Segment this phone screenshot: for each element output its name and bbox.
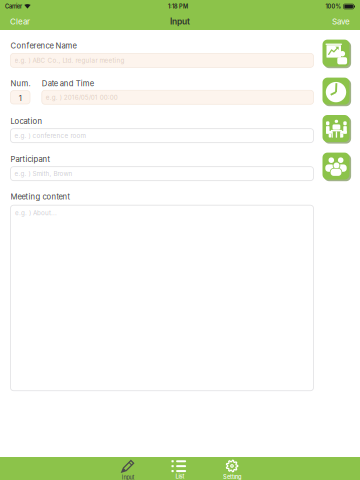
button[interactable]: Save <box>323 13 360 30</box>
staticText: List <box>175 473 184 480</box>
button[interactable]: Clear <box>0 13 39 30</box>
staticText: 1:18 PM <box>168 3 188 10</box>
button[interactable]: Pick participants <box>322 153 351 181</box>
button[interactable]: Input <box>102 457 154 480</box>
staticText: Participant <box>10 155 50 164</box>
staticText: Conference Name <box>10 41 76 50</box>
staticText: Input <box>121 474 134 480</box>
staticText: e.g. ) ABC Co., Ltd. regular meeting <box>14 57 124 64</box>
staticText: Date and Time <box>42 79 94 88</box>
button[interactable]: List <box>154 457 206 480</box>
staticText: Input <box>170 16 190 27</box>
staticText: 100% <box>325 3 341 10</box>
button[interactable]: Setting <box>206 457 258 480</box>
staticText: Location <box>10 117 42 126</box>
staticText: Meeting content <box>10 192 70 201</box>
staticText: e.g. ) 2016/05/01 00:00 <box>46 94 118 101</box>
staticText: Clear <box>10 17 30 26</box>
button[interactable]: Conference name list <box>322 40 351 68</box>
staticText: Num. <box>10 79 30 88</box>
staticText: Setting <box>223 474 241 480</box>
staticText: e.g. ) Smith, Brown <box>14 170 72 178</box>
staticText: Save <box>332 17 350 26</box>
staticText: 1 <box>19 94 22 103</box>
button[interactable]: Pick date and time <box>322 78 351 106</box>
staticText: e.g. ) conference room <box>14 132 85 140</box>
button[interactable]: Pick location <box>322 115 351 144</box>
staticText: Carrier <box>5 3 22 10</box>
staticText: e.g. ) About... <box>15 209 57 217</box>
